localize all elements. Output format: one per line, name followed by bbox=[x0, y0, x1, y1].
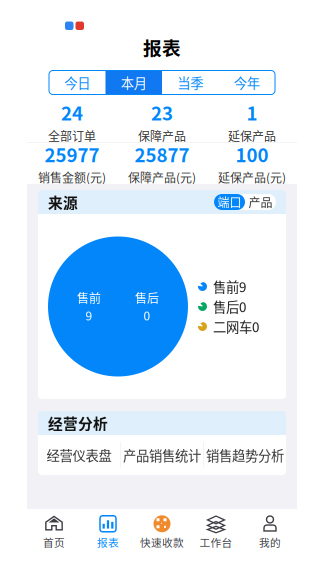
staticText: 产品 bbox=[248, 193, 272, 211]
staticText: 经营分析 bbox=[48, 412, 108, 434]
staticText: 9 bbox=[85, 306, 92, 324]
staticText: 产品销售统计 bbox=[123, 445, 201, 465]
button[interactable]: 报表 bbox=[81, 512, 135, 552]
staticText: 我的 bbox=[259, 534, 281, 550]
button[interactable]: 快速收款 bbox=[135, 512, 189, 552]
staticText: 售前 bbox=[77, 289, 101, 306]
staticText: 售前9 bbox=[213, 277, 246, 296]
staticText: 保障产品(元) bbox=[128, 169, 196, 186]
staticText: 快速收款 bbox=[140, 534, 184, 550]
button[interactable]: 端口 bbox=[214, 194, 245, 210]
staticText: 25877 bbox=[134, 141, 189, 168]
button[interactable]: 工作台 bbox=[189, 512, 243, 552]
staticText: 23 bbox=[151, 99, 173, 126]
staticText: 今年 bbox=[234, 73, 260, 92]
staticText: 首页 bbox=[43, 534, 65, 550]
staticText: 报表 bbox=[97, 534, 119, 550]
staticText: 二网车0 bbox=[213, 317, 259, 336]
button[interactable]: 产品 bbox=[245, 194, 276, 210]
staticText: 端口 bbox=[217, 193, 241, 211]
staticText: 当季 bbox=[177, 73, 203, 92]
button[interactable]: 本月 bbox=[105, 70, 162, 94]
staticText: 延保产品(元) bbox=[218, 169, 286, 186]
staticText: 今日 bbox=[64, 73, 90, 92]
staticText: 本月 bbox=[121, 73, 147, 92]
staticText: 全部订单 bbox=[48, 127, 96, 144]
staticText: 售后0 bbox=[213, 297, 246, 316]
button[interactable]: 当季 bbox=[162, 70, 218, 94]
button[interactable]: 产品销售统计 bbox=[121, 435, 203, 475]
button[interactable]: 我的 bbox=[243, 512, 297, 552]
staticText: 工作台 bbox=[199, 534, 232, 550]
staticText: 报表 bbox=[143, 33, 181, 60]
staticText: 25977 bbox=[44, 141, 99, 168]
button[interactable]: 首页 bbox=[27, 512, 81, 552]
button[interactable]: 今日 bbox=[49, 70, 105, 94]
staticText: 经营仪表盘 bbox=[47, 445, 112, 465]
staticText: 保障产品 bbox=[138, 127, 186, 144]
button[interactable]: 销售趋势分析 bbox=[204, 435, 286, 475]
button[interactable]: 经营仪表盘 bbox=[38, 435, 120, 475]
staticText: 来源 bbox=[48, 191, 78, 213]
staticText: 100 bbox=[235, 141, 268, 168]
button[interactable]: 今年 bbox=[218, 70, 275, 94]
staticText: 销售趋势分析 bbox=[206, 445, 284, 465]
staticText: 延保产品 bbox=[228, 127, 276, 144]
staticText: 1 bbox=[246, 99, 257, 126]
staticText: 销售金额(元) bbox=[38, 169, 106, 186]
staticText: 售后 bbox=[135, 289, 159, 306]
staticText: 24 bbox=[61, 99, 83, 126]
staticText: 0 bbox=[143, 306, 150, 324]
